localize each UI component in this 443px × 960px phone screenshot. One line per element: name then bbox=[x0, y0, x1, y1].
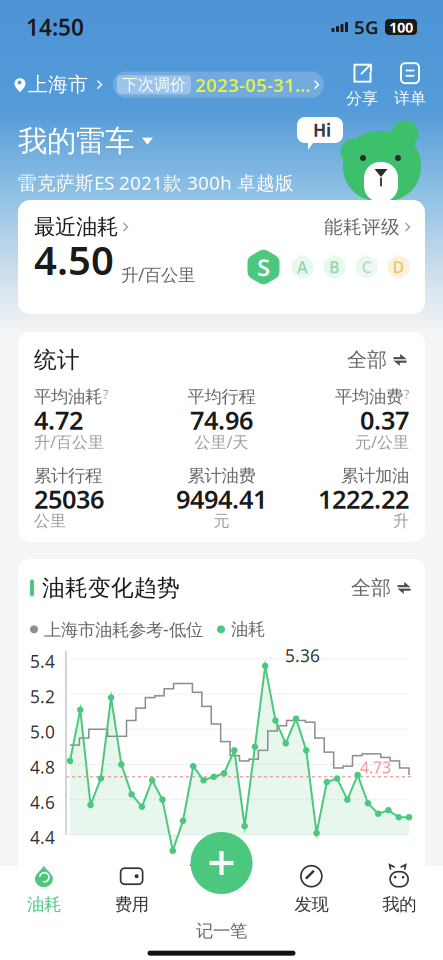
button[interactable]: 我的雷车 bbox=[18, 123, 153, 159]
staticText: 雷克萨斯ES 2021款 300h 卓越版 bbox=[18, 170, 294, 195]
staticText: C bbox=[361, 256, 371, 278]
staticText: 油耗变化趋势 bbox=[42, 574, 180, 602]
button[interactable]: 记一笔 bbox=[190, 832, 252, 894]
staticText: 公里/天 bbox=[194, 431, 248, 452]
staticText: S bbox=[257, 251, 270, 283]
staticText: 升/百公里 bbox=[121, 263, 195, 286]
staticText: 100 bbox=[389, 17, 413, 37]
staticText: 25036 bbox=[34, 482, 104, 516]
button[interactable]: 我的 bbox=[355, 866, 443, 912]
staticText: 5.4 bbox=[30, 650, 55, 673]
staticText: 升/百公里 bbox=[34, 431, 104, 452]
staticText: 上海市 bbox=[28, 72, 88, 97]
staticText: ? bbox=[404, 386, 409, 402]
staticText: Hi bbox=[313, 118, 331, 141]
button[interactable]: 发现 bbox=[267, 866, 355, 912]
staticText: 9494.41 bbox=[176, 482, 267, 516]
staticText: 全部 bbox=[351, 576, 391, 600]
staticText: 0.37 bbox=[360, 403, 409, 437]
staticText: 累计油费 bbox=[187, 465, 255, 486]
staticText: 元/公里 bbox=[355, 431, 409, 452]
staticText: 我的 bbox=[382, 894, 416, 915]
staticText: 5.0 bbox=[30, 720, 55, 743]
staticText: 累计行程 bbox=[34, 465, 102, 486]
button[interactable]: 上海市 bbox=[14, 72, 103, 98]
button[interactable]: 详单 bbox=[389, 62, 431, 108]
button[interactable]: 能耗评级 bbox=[324, 216, 411, 238]
staticText: 分享 bbox=[346, 89, 378, 108]
staticText: 累计加油 bbox=[341, 465, 409, 486]
staticText: 4.50 bbox=[34, 233, 114, 286]
staticText: 全部 bbox=[347, 348, 387, 372]
button[interactable]: 最近油耗 bbox=[34, 216, 129, 238]
button[interactable]: 下次调价 bbox=[113, 72, 324, 98]
button[interactable]: 费用 bbox=[88, 866, 176, 912]
staticText: 4.4 bbox=[30, 826, 55, 849]
staticText: 平均行程 bbox=[187, 386, 255, 407]
staticText: 最近油耗 bbox=[34, 214, 118, 240]
staticText: B bbox=[329, 256, 340, 278]
staticText: 元 bbox=[213, 511, 229, 531]
staticText: D bbox=[392, 256, 404, 278]
staticText: A bbox=[297, 256, 308, 278]
staticText: 5G bbox=[354, 15, 379, 39]
button[interactable]: 油耗 bbox=[0, 866, 88, 912]
staticText: 5.2 bbox=[30, 685, 55, 708]
staticText: 5.36 bbox=[285, 644, 320, 667]
button[interactable]: 全部 bbox=[347, 348, 409, 372]
staticText: 能耗评级 bbox=[324, 215, 400, 238]
staticText: 记一笔 bbox=[196, 920, 247, 942]
staticText: 4.29 bbox=[186, 857, 221, 880]
staticText: 平均油耗 bbox=[34, 386, 102, 407]
button[interactable]: 全部 bbox=[351, 576, 413, 600]
staticText: 统计 bbox=[34, 346, 80, 374]
staticText: 发现 bbox=[294, 894, 328, 915]
staticText: 2023-05-31... bbox=[195, 72, 310, 97]
staticText: 74.96 bbox=[190, 403, 253, 437]
staticText: ? bbox=[103, 386, 108, 402]
staticText: 费用 bbox=[115, 894, 149, 915]
staticText: 下次调价 bbox=[122, 75, 186, 94]
staticText: 油耗 bbox=[231, 619, 265, 640]
staticText: 4.73 bbox=[360, 757, 391, 778]
staticText: 详单 bbox=[394, 89, 426, 108]
staticText: 油耗 bbox=[27, 894, 61, 915]
staticText: 我的雷车 bbox=[18, 123, 134, 159]
staticText: 14:50 bbox=[26, 12, 84, 42]
staticText: 4.8 bbox=[30, 755, 55, 778]
staticText: 1222.22 bbox=[318, 482, 409, 516]
staticText: 升 bbox=[393, 511, 409, 531]
staticText: 公里 bbox=[34, 511, 66, 531]
staticText: 4.6 bbox=[30, 791, 55, 814]
staticText: 上海市油耗参考-低位 bbox=[44, 618, 203, 641]
staticText: 平均油费 bbox=[335, 386, 403, 407]
button[interactable]: 分享 bbox=[341, 62, 383, 108]
staticText: 4.72 bbox=[34, 403, 83, 437]
